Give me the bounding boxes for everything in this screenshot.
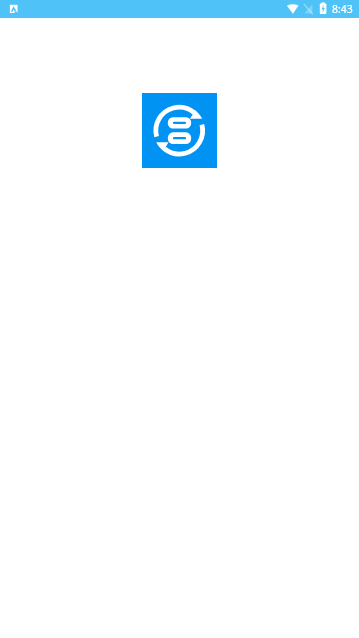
button[interactable]: App logo: [142, 93, 217, 168]
other: Status bar: [0, 0, 359, 18]
